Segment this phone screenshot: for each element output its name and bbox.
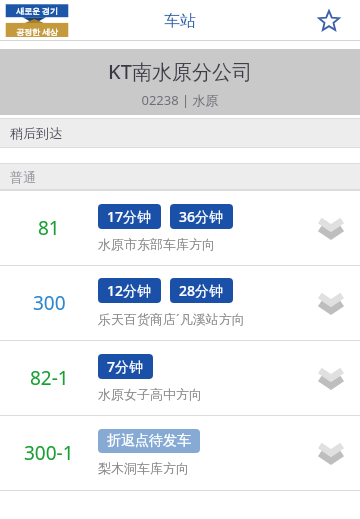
button[interactable]: Expand	[302, 340, 360, 415]
staticText: 공정한 세상	[16, 26, 59, 37]
button[interactable]: 300	[0, 265, 360, 340]
button[interactable]: 82-1	[0, 340, 360, 415]
staticText: 普通	[10, 169, 36, 185]
staticText: 82-1	[30, 365, 69, 391]
staticText: 车站	[164, 11, 196, 31]
staticText: 乐天百货商店´凡溪站方向	[98, 310, 245, 328]
button[interactable]: Expand	[302, 190, 360, 265]
staticText: 折返点待发车	[107, 432, 191, 450]
staticText: 새로운 경기	[16, 5, 59, 16]
staticText: 36分钟	[179, 207, 224, 226]
button[interactable]: 81	[0, 190, 360, 265]
staticText: 12分钟	[107, 281, 152, 300]
staticText: 7分钟	[107, 357, 144, 376]
staticText: 81	[38, 215, 60, 241]
button[interactable]: 300-1	[0, 415, 360, 490]
staticText: 水原市东部车库方向	[98, 236, 215, 252]
button[interactable]: KT南水原分公司	[0, 49, 360, 115]
button[interactable]: Gyeonggi logo	[3, 2, 71, 40]
button[interactable]: Expand	[302, 265, 360, 340]
staticText: KT南水原分公司	[108, 58, 252, 85]
button[interactable]: Expand	[302, 415, 360, 490]
staticText: 水原女子高中方向	[98, 386, 202, 402]
staticText: 28分钟	[179, 281, 224, 300]
staticText: 稍后到达	[10, 125, 62, 141]
staticText: 300-1	[24, 440, 74, 466]
staticText: 梨木洞车库方向	[98, 460, 189, 476]
button[interactable]: Favorite	[312, 4, 346, 38]
staticText: 02238 | 水原	[141, 91, 219, 109]
staticText: 17分钟	[107, 207, 152, 226]
staticText: 300	[33, 290, 66, 316]
